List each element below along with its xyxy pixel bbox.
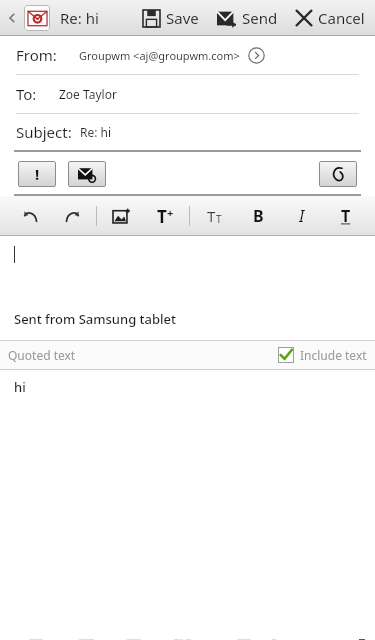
- button[interactable]: Back: [4, 0, 20, 36]
- button[interactable]: Attach: [319, 161, 357, 187]
- staticText: T: [157, 205, 167, 228]
- staticText: !: [35, 164, 40, 184]
- other: Choose account: [248, 47, 265, 64]
- button[interactable]: Font size: [202, 204, 226, 228]
- button[interactable]: To:: [0, 75, 375, 113]
- staticText: Re: hi: [60, 8, 99, 28]
- button[interactable]: Italic: [290, 204, 314, 228]
- button[interactable]: Send: [215, 0, 280, 36]
- staticText: Quoted text: [8, 347, 76, 363]
- button[interactable]: Insert image: [109, 204, 133, 228]
- staticText: Zoe Taylor: [59, 86, 117, 102]
- button[interactable]: Email app: [24, 5, 50, 31]
- button[interactable]: Increase font size: [153, 204, 177, 228]
- staticText: Include text: [300, 347, 367, 363]
- button[interactable]: Subject:: [0, 114, 375, 150]
- staticText: Subject:: [16, 122, 72, 142]
- staticText: T: [216, 212, 222, 226]
- button[interactable]: [0, 236, 375, 298]
- staticText: Re: hi: [80, 124, 112, 140]
- staticText: From:: [16, 45, 57, 65]
- staticText: Groupwm <aj@groupwm.com>: [79, 48, 240, 63]
- staticText: Send: [242, 8, 278, 28]
- staticText: B: [253, 205, 264, 227]
- button[interactable]: Tracking options: [68, 161, 106, 187]
- staticText: To:: [16, 84, 37, 104]
- button[interactable]: Bold: [246, 204, 270, 228]
- button[interactable]: Cancel: [294, 0, 367, 36]
- button[interactable]: Include text: [278, 347, 367, 363]
- staticText: hi: [14, 378, 26, 396]
- staticText: +: [167, 205, 174, 220]
- staticText: Save: [166, 8, 199, 28]
- staticText: Cancel: [318, 8, 365, 28]
- staticText: T: [341, 205, 351, 227]
- button[interactable]: From:: [0, 36, 375, 74]
- staticText: T: [207, 206, 216, 226]
- button[interactable]: Save: [141, 0, 201, 36]
- staticText: I: [299, 205, 305, 227]
- button[interactable]: Priority: [18, 161, 56, 187]
- staticText: Sent from Samsung tablet: [14, 310, 177, 328]
- button[interactable]: Undo: [18, 204, 42, 228]
- button[interactable]: Underline: [334, 204, 358, 228]
- button[interactable]: Redo: [60, 204, 84, 228]
